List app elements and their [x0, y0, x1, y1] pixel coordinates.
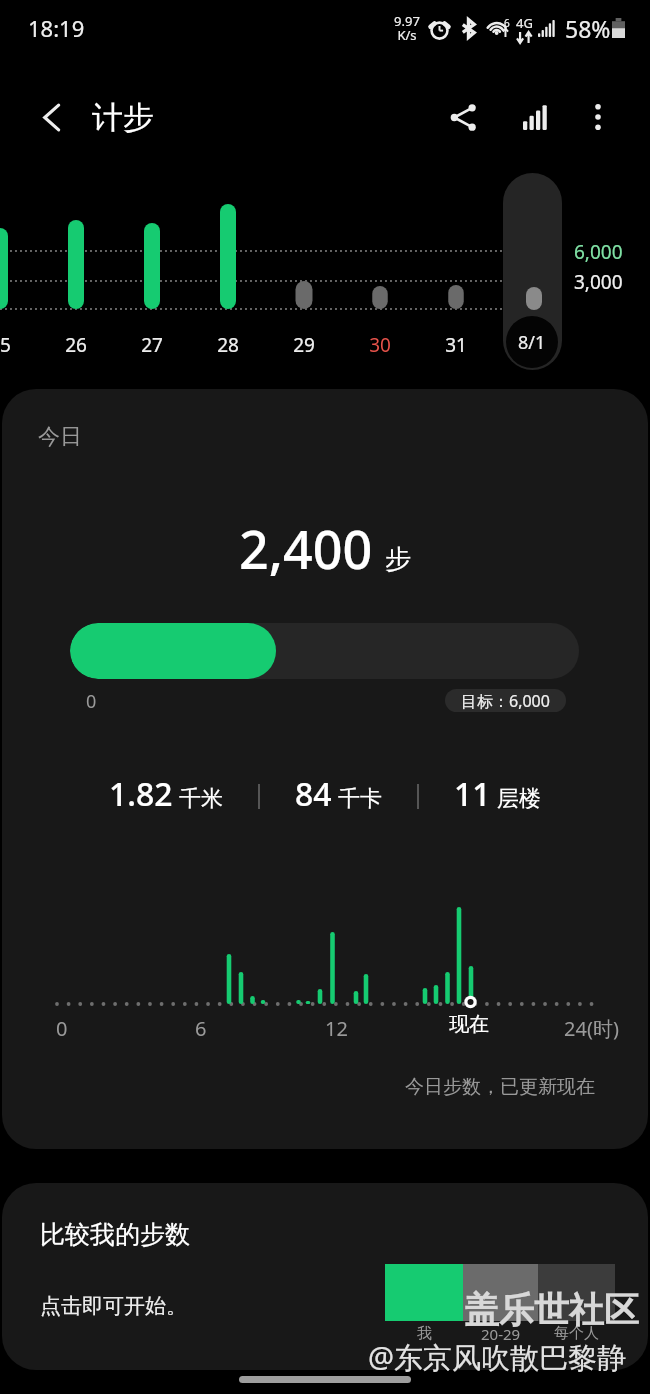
staticText: 0 [86, 689, 97, 714]
staticText: 24(时) [564, 1015, 619, 1042]
button[interactable]: 31 [422, 168, 490, 368]
staticText: 今日步数，已更新现在 [405, 1075, 595, 1099]
button[interactable] [70, 623, 579, 679]
staticText: 84 [295, 772, 332, 816]
button[interactable]: Share [435, 89, 491, 145]
staticText: 1.82 [109, 772, 173, 816]
staticText: 9.97 K/s [394, 12, 420, 44]
staticText: 0 [56, 1015, 68, 1042]
staticText: 步 [385, 543, 411, 576]
button[interactable]: 目标：6,000 [445, 689, 566, 712]
staticText: 千卡 [338, 785, 382, 813]
staticText: 11 [454, 772, 491, 816]
button[interactable]: 比较我的步数 [2, 1183, 648, 1370]
button[interactable]: 30 [346, 168, 414, 368]
staticText: 层楼 [497, 785, 541, 813]
staticText: 8/1 [518, 330, 546, 355]
staticText: 每个人 [554, 1324, 599, 1343]
staticText: 29 [270, 332, 338, 358]
button[interactable] [503, 173, 562, 370]
staticText: 今日 [38, 423, 82, 451]
staticText: 27 [118, 332, 186, 358]
staticText: @东京风吹散巴黎静 [368, 1337, 627, 1377]
staticText: 26 [42, 332, 110, 358]
staticText: 6 [195, 1015, 207, 1042]
button[interactable]: 27 [118, 168, 186, 368]
staticText: 30 [346, 332, 414, 358]
staticText: 点击即可开始。 [40, 1293, 187, 1319]
staticText: 3,000 [574, 269, 623, 295]
staticText: 2,400 [239, 513, 373, 584]
staticText: 31 [422, 332, 490, 358]
button[interactable]: 28 [194, 168, 262, 368]
staticText: 4G [516, 14, 533, 32]
staticText: 6 [504, 16, 510, 30]
staticText: 现在 [449, 1012, 489, 1037]
staticText: 12 [325, 1015, 348, 1042]
button[interactable]: Statistics [508, 89, 564, 145]
staticText: 计步 [92, 98, 154, 137]
staticText: 千米 [179, 785, 223, 813]
staticText: 20-29 [481, 1324, 521, 1344]
staticText: 58% [565, 13, 611, 44]
button[interactable]: More options [570, 89, 626, 145]
staticText: 28 [194, 332, 262, 358]
staticText: 6,000 [574, 239, 623, 265]
button[interactable]: Back [23, 89, 79, 145]
staticText: 目标：6,000 [461, 690, 550, 712]
button[interactable]: 29 [270, 168, 338, 368]
staticText: 盖乐世社区 [464, 1288, 639, 1332]
button[interactable]: 26 [42, 168, 110, 368]
staticText: 比较我的步数 [40, 1219, 190, 1250]
button[interactable]: 25 [0, 168, 34, 368]
staticText: 25 [0, 332, 34, 358]
staticText: 我 [417, 1324, 432, 1343]
staticText: 18:19 [28, 13, 85, 43]
